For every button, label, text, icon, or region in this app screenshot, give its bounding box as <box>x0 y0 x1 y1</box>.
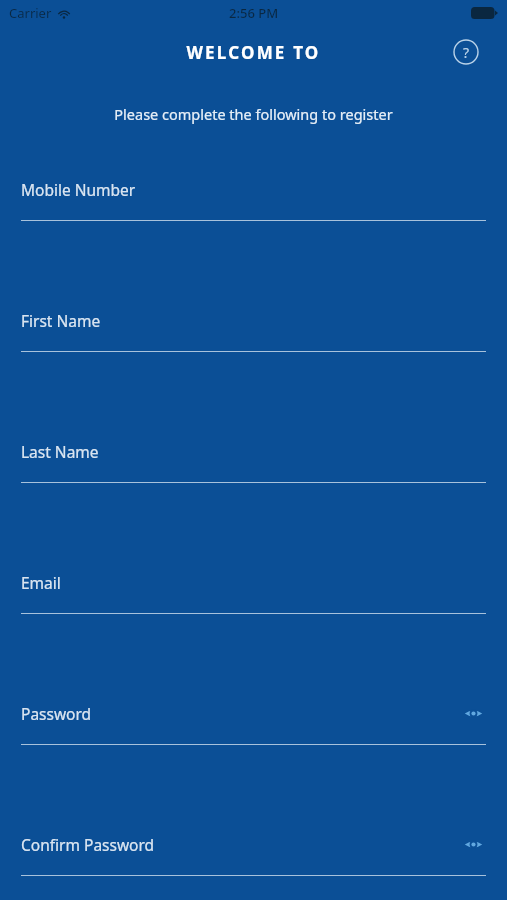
staticText: First Name <box>21 310 486 331</box>
staticText: WELCOME TO <box>186 41 321 64</box>
staticText: 2:56 PM <box>229 4 279 22</box>
staticText: ? <box>463 43 470 62</box>
button[interactable]: Confirm Password <box>0 823 507 876</box>
staticText: Last Name <box>21 441 486 462</box>
staticText: Confirm Password <box>21 834 486 855</box>
button[interactable]: Mobile Number <box>0 168 507 221</box>
staticText: Password <box>21 703 486 724</box>
staticText: Please complete the following to registe… <box>0 104 507 124</box>
staticText: Email <box>21 572 486 593</box>
button[interactable]: First Name <box>0 299 507 352</box>
button[interactable]: Help <box>453 39 479 65</box>
button[interactable]: Last Name <box>0 430 507 483</box>
staticText: Mobile Number <box>21 179 486 200</box>
button[interactable]: Show password <box>460 831 486 857</box>
staticText: Carrier <box>9 4 52 22</box>
button[interactable]: Email <box>0 561 507 614</box>
button[interactable]: Password <box>0 692 507 745</box>
button[interactable]: Show password <box>460 700 486 726</box>
